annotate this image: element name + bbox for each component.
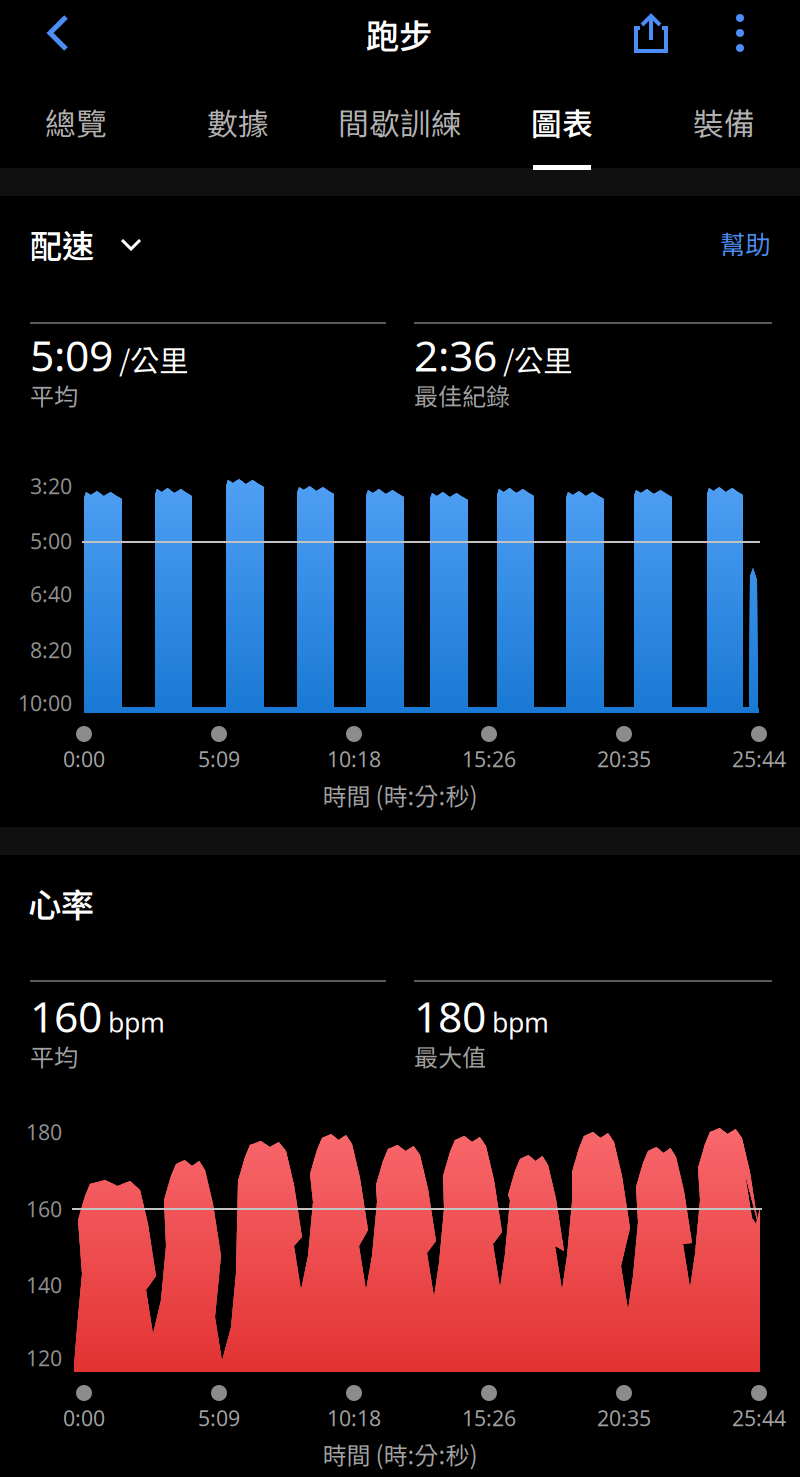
staticText: 3:20 bbox=[30, 472, 72, 500]
staticText: 總覽 bbox=[45, 100, 107, 144]
button[interactable]: 總覽 bbox=[0, 66, 157, 168]
staticText: 幫助 bbox=[720, 225, 770, 261]
button[interactable]: Share bbox=[614, 0, 688, 66]
staticText: 跑步 bbox=[366, 10, 432, 58]
staticText: 15:26 bbox=[462, 1404, 516, 1432]
staticText: 5:09 bbox=[30, 327, 113, 383]
staticText: 5:09 bbox=[198, 1404, 240, 1432]
staticText: 數據 bbox=[207, 100, 269, 144]
staticText: 平均 bbox=[30, 378, 78, 412]
staticText: 25:44 bbox=[732, 745, 786, 773]
staticText: 25:44 bbox=[732, 1404, 786, 1432]
button[interactable]: 圖表 bbox=[481, 66, 643, 168]
staticText: /公里 bbox=[119, 337, 188, 380]
staticText: 0:00 bbox=[63, 745, 105, 773]
button[interactable]: 幫助 bbox=[690, 214, 800, 272]
button[interactable]: 間歇訓練 bbox=[319, 66, 481, 168]
staticText: bpm bbox=[108, 1004, 165, 1040]
staticText: 時間 (時:分:秒) bbox=[322, 1437, 477, 1471]
staticText: /公里 bbox=[503, 337, 572, 380]
staticText: 10:18 bbox=[327, 1404, 381, 1432]
staticText: 裝備 bbox=[693, 100, 755, 144]
button[interactable]: Back bbox=[12, 0, 104, 66]
staticText: 5:09 bbox=[198, 745, 240, 773]
staticText: 最佳紀錄 bbox=[414, 378, 510, 412]
staticText: 0:00 bbox=[63, 1404, 105, 1432]
staticText: 平均 bbox=[30, 1039, 78, 1073]
staticText: 5:00 bbox=[30, 527, 72, 555]
staticText: 8:20 bbox=[30, 636, 72, 664]
staticText: 間歇訓練 bbox=[338, 100, 462, 144]
staticText: 心率 bbox=[28, 879, 94, 927]
staticText: 160 bbox=[30, 988, 102, 1044]
staticText: 最大值 bbox=[414, 1039, 486, 1073]
staticText: 10:18 bbox=[327, 745, 381, 773]
staticText: 180 bbox=[26, 1118, 62, 1146]
button[interactable]: 數據 bbox=[157, 66, 319, 168]
button[interactable]: More options bbox=[707, 0, 773, 66]
staticText: 2:36 bbox=[414, 327, 497, 383]
staticText: 6:40 bbox=[30, 580, 72, 608]
staticText: 160 bbox=[26, 1195, 62, 1223]
staticText: 15:26 bbox=[462, 745, 516, 773]
staticText: 180 bbox=[414, 988, 486, 1044]
staticText: 140 bbox=[26, 1271, 62, 1299]
staticText: 時間 (時:分:秒) bbox=[322, 778, 477, 812]
button[interactable]: 配速 bbox=[30, 210, 220, 280]
staticText: bpm bbox=[492, 1004, 549, 1040]
staticText: 20:35 bbox=[597, 745, 651, 773]
staticText: 20:35 bbox=[597, 1404, 651, 1432]
staticText: 圖表 bbox=[531, 100, 593, 144]
staticText: 120 bbox=[26, 1344, 62, 1372]
button[interactable]: 裝備 bbox=[643, 66, 800, 168]
staticText: 配速 bbox=[30, 221, 94, 267]
staticText: 10:00 bbox=[18, 689, 72, 717]
